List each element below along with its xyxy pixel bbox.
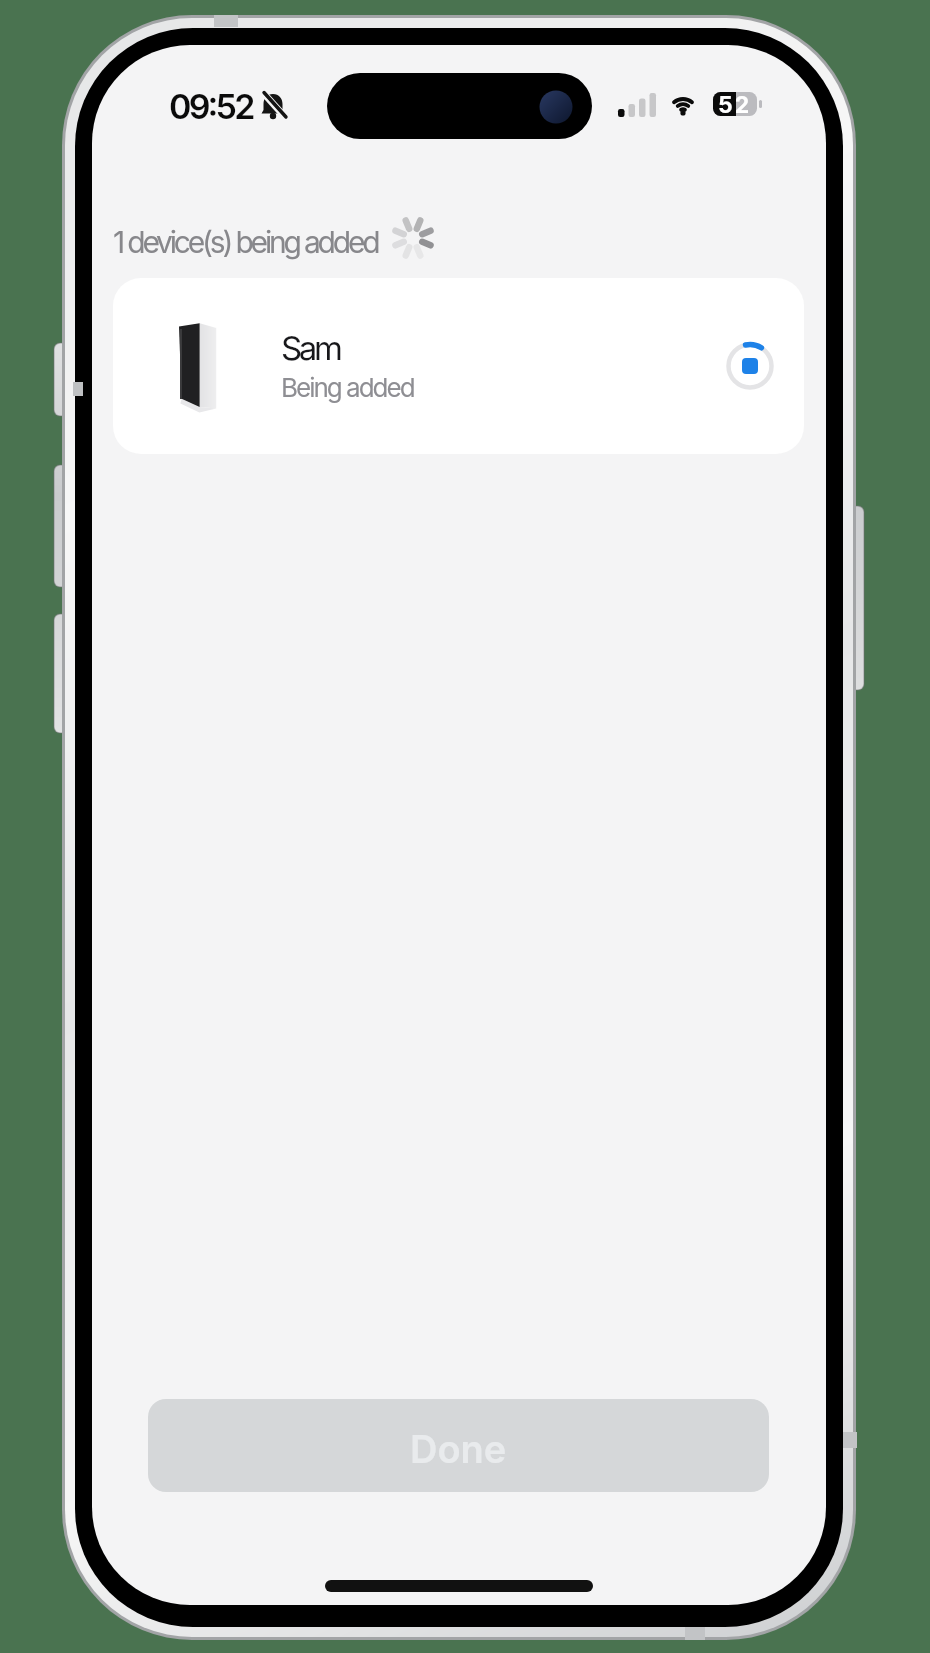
- staticText: Done: [410, 1426, 507, 1472]
- button[interactable]: [726, 342, 774, 390]
- staticText: Sam: [281, 328, 340, 368]
- staticText: 1 device(s) being added: [113, 224, 378, 260]
- button[interactable]: Done: [148, 1399, 769, 1492]
- staticText: 09:52: [169, 86, 253, 127]
- button[interactable]: Sam: [113, 278, 804, 454]
- staticText: Being added: [281, 372, 414, 403]
- staticText: 52: [718, 91, 752, 119]
